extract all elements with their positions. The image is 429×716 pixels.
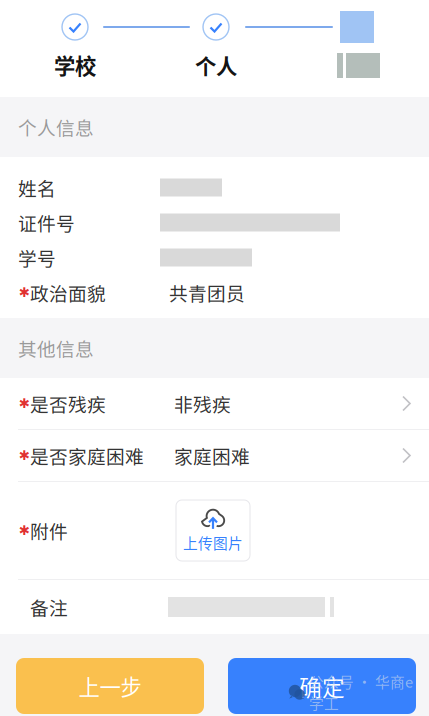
staticText: 证件号 [18, 209, 75, 236]
staticText: 上传图片 [183, 532, 243, 553]
staticText: ✱ [18, 448, 29, 463]
button[interactable]: ✱ [0, 430, 429, 481]
button[interactable]: 上一步 [16, 658, 204, 714]
button[interactable]: ✱ [0, 378, 429, 429]
staticText: ✱ [18, 396, 29, 411]
staticText: 非残疾 [174, 390, 231, 417]
staticText: 附件 [30, 517, 68, 544]
staticText: 上一步 [78, 671, 141, 701]
staticText: 姓名 [18, 174, 56, 201]
staticText: 备注 [30, 593, 68, 620]
staticText: 学号 [18, 244, 56, 271]
staticText: 家庭困难 [174, 442, 250, 469]
staticText: 政治面貌 [30, 279, 106, 306]
staticText: ✱ [18, 285, 29, 300]
staticText: 是否家庭困难 [30, 442, 144, 469]
staticText: 个人信息 [18, 113, 94, 140]
staticText: 共青团员 [169, 279, 245, 306]
button[interactable]: 确定 [228, 658, 416, 714]
staticText: 学校 [54, 50, 96, 80]
staticText: 公众号 · 华商e学工 [309, 671, 413, 713]
staticText: ✱ [18, 523, 29, 538]
staticText: 其他信息 [18, 334, 94, 361]
button[interactable]: 上传图片 [176, 500, 250, 561]
staticText: 个人 [195, 50, 237, 80]
staticText: 是否残疾 [30, 390, 106, 417]
staticText: 确定 [299, 670, 345, 702]
